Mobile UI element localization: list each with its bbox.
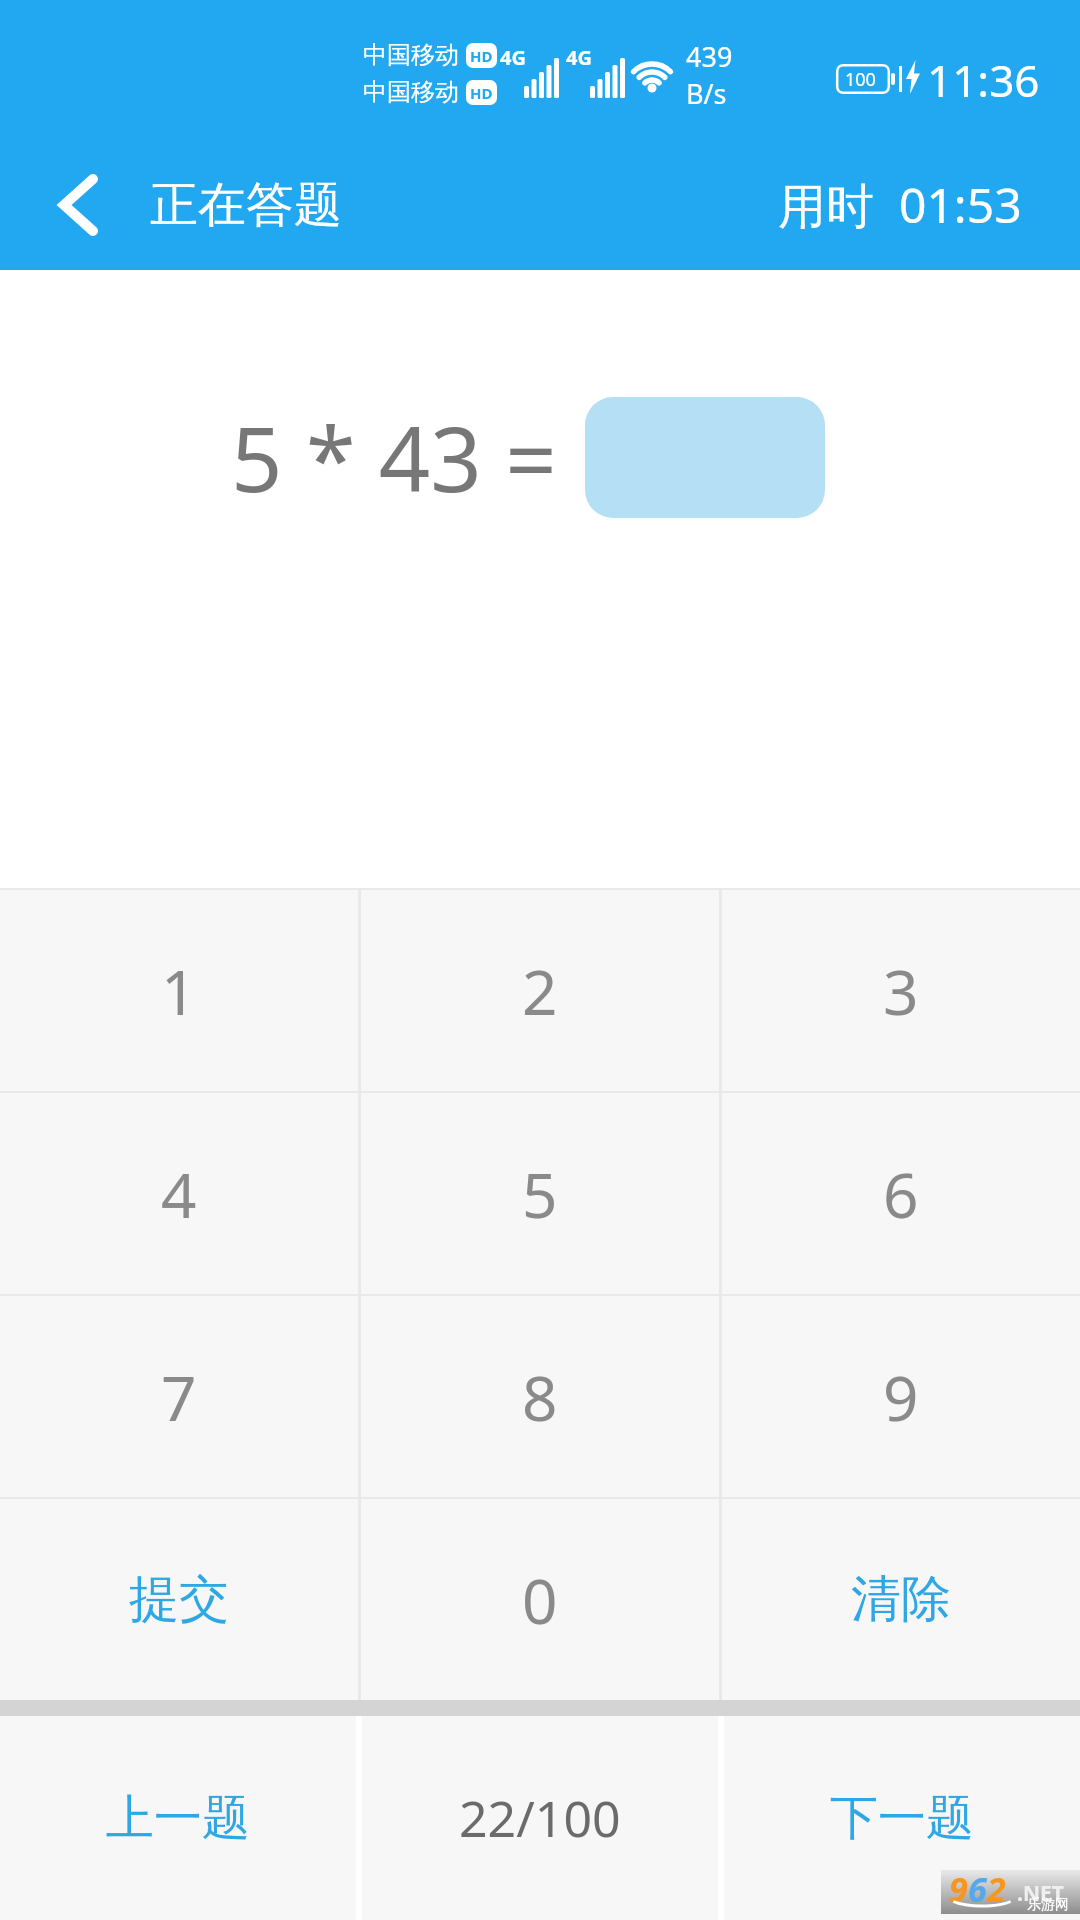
staticText: 上一题 [106,1788,250,1848]
staticText: 中国移动 [363,77,459,107]
staticText: 9 [883,1355,919,1439]
staticText: 4G [500,44,526,71]
staticText: 乐游网 [1027,1896,1069,1914]
staticText: 7 [161,1355,197,1439]
staticText: 100 [845,67,876,92]
button[interactable]: 清除 [722,1499,1080,1700]
staticText: 11:36 [927,50,1040,110]
button[interactable]: 7 [0,1296,358,1497]
staticText: 4G [566,44,592,71]
staticText: 2 [522,949,558,1033]
button[interactable]: 上一题 [0,1716,356,1920]
staticText: 0 [522,1558,558,1642]
button[interactable]: 1 [0,890,358,1091]
button[interactable]: 提交 [0,1499,358,1700]
button[interactable]: 下一题 [724,1716,1080,1920]
staticText: 提交 [129,1568,229,1631]
button[interactable]: 0 [361,1499,719,1700]
staticText: 439 [686,38,733,75]
staticText: HD [470,83,493,103]
staticText: 8 [522,1355,558,1439]
staticText: B/s [686,75,727,112]
staticText: 2 [987,1866,1006,1910]
staticText: 正在答题 [150,175,342,235]
staticText: 下一题 [830,1788,974,1848]
staticText: HD [470,46,493,66]
button[interactable]: 22/100 [362,1716,718,1920]
button[interactable]: 6 [722,1093,1080,1294]
staticText: 中国移动 [363,40,459,70]
staticText: 3 [883,949,919,1033]
button[interactable]: 3 [722,890,1080,1091]
staticText: 9 [949,1866,968,1910]
button[interactable]: 8 [361,1296,719,1497]
staticText: 用时 01:53 [778,172,1022,238]
staticText: 6 [968,1866,987,1910]
staticText: 5 * 43 = [231,396,557,519]
button[interactable]: 5 [361,1093,719,1294]
button[interactable]: 4 [0,1093,358,1294]
staticText: 4 [161,1152,197,1236]
staticText: 5 [522,1152,558,1236]
staticText: .NET [1017,1879,1064,1908]
button[interactable]: 9 [722,1296,1080,1497]
button[interactable] [0,140,150,270]
button[interactable]: 2 [361,890,719,1091]
staticText: 清除 [851,1568,951,1631]
staticText: 1 [161,949,197,1033]
staticText: 6 [883,1152,919,1236]
staticText: 22/100 [459,1784,621,1852]
button[interactable] [585,397,825,518]
